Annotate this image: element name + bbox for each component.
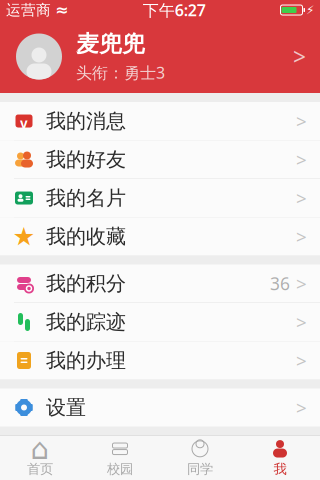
staticText: 我的消息 — [46, 109, 126, 133]
staticText: ≈ — [55, 1, 68, 19]
staticText: 头衔：勇士3 — [76, 62, 165, 83]
staticText: > — [296, 395, 307, 420]
staticText: v — [20, 114, 28, 132]
staticText: 同学 — [187, 461, 213, 477]
button[interactable]: 同学 — [160, 436, 240, 480]
staticText: > — [296, 186, 307, 210]
staticText: 首页 — [27, 461, 53, 477]
staticText: ⌂ — [30, 432, 49, 465]
staticText: > — [293, 41, 306, 71]
button[interactable]: 我的好友 — [0, 140, 320, 179]
button[interactable]: 我的名片 — [0, 179, 320, 217]
staticText: > — [296, 310, 307, 334]
staticText: 我的好友 — [46, 147, 126, 172]
staticText: 我的名片 — [46, 186, 126, 210]
button[interactable]: 我的积分 — [0, 264, 320, 303]
button[interactable]: 校园 — [80, 436, 160, 480]
button[interactable]: 设置 — [0, 388, 320, 426]
button[interactable]: ★ — [0, 217, 320, 255]
button[interactable]: ⌂ — [0, 436, 80, 480]
staticText: 校园 — [107, 461, 133, 477]
staticText: 我的积分 — [46, 271, 126, 296]
staticText: 麦兜兜 — [76, 30, 145, 58]
staticText: > — [296, 224, 307, 249]
staticText: > — [296, 271, 307, 296]
button[interactable]: v — [0, 102, 320, 140]
button[interactable]: 我 — [240, 436, 320, 480]
staticText: 下午6:27 — [143, 0, 206, 21]
button[interactable]: 我的踪迹 — [0, 303, 320, 341]
staticText: ★ — [12, 222, 35, 251]
staticText: > — [296, 109, 307, 133]
button[interactable]: 我的办理 — [0, 341, 320, 379]
staticText: 运营商 — [6, 1, 51, 19]
staticText: 36 — [270, 272, 290, 295]
staticText: 我 — [273, 461, 286, 477]
staticText: ⚡︎ — [306, 3, 314, 17]
button[interactable]: 麦兜兜 — [0, 20, 320, 93]
staticText: > — [296, 348, 307, 373]
staticText: 我的收藏 — [46, 224, 126, 249]
staticText: 设置 — [46, 395, 86, 420]
staticText: 我的踪迹 — [46, 310, 126, 334]
staticText: > — [296, 147, 307, 172]
staticText: 我的办理 — [46, 348, 126, 373]
